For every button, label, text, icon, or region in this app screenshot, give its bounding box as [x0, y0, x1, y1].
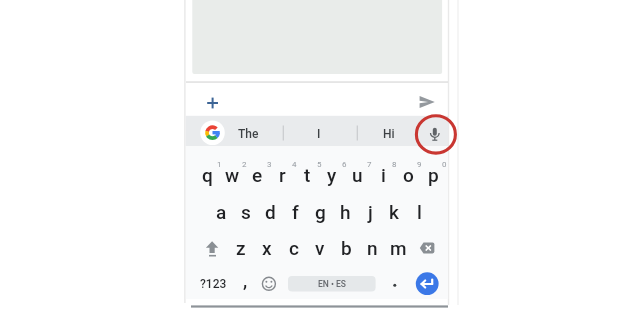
button[interactable]: s [216, 197, 276, 227]
button[interactable] [199, 234, 226, 261]
button[interactable]: ?123 [183, 269, 243, 299]
staticText: o [403, 164, 414, 186]
staticText: s [241, 201, 251, 223]
staticText: k [389, 201, 399, 223]
button[interactable]: x [237, 233, 297, 263]
staticText: 9 [417, 160, 422, 169]
button[interactable]: m [368, 233, 428, 263]
staticText: 6 [342, 160, 347, 169]
staticText: 3 [267, 160, 272, 169]
button[interactable]: , [215, 265, 275, 295]
button[interactable]: The [218, 119, 278, 149]
staticText: h [340, 201, 351, 223]
staticText: 1 [217, 160, 222, 169]
button[interactable] [198, 89, 226, 117]
staticText: , [243, 269, 248, 291]
button[interactable]: p [403, 160, 463, 190]
staticText: i [381, 164, 386, 186]
staticText: Hi [383, 127, 395, 141]
button[interactable]: EN • ES [302, 269, 362, 299]
button[interactable]: v [290, 233, 350, 263]
staticText: c [289, 237, 299, 259]
staticText: j [368, 201, 373, 223]
staticText: d [265, 201, 276, 223]
button[interactable]: I [289, 119, 349, 149]
staticText: x [262, 237, 272, 259]
button[interactable]: t [277, 160, 337, 190]
staticText: g [315, 201, 326, 223]
button[interactable]: g [290, 197, 350, 227]
button[interactable]: Hi [359, 119, 419, 149]
button[interactable] [256, 271, 282, 297]
staticText: u [352, 164, 363, 186]
staticText: ?123 [200, 277, 227, 291]
staticText: 5 [317, 160, 322, 169]
button[interactable]: i [353, 160, 413, 190]
button[interactable] [382, 272, 408, 298]
staticText: q [202, 164, 213, 186]
staticText: 2 [242, 160, 247, 169]
button[interactable] [414, 234, 441, 261]
staticText: f [292, 201, 299, 223]
button[interactable]: z [211, 233, 271, 263]
button[interactable]: b [316, 233, 376, 263]
staticText: v [315, 237, 325, 259]
staticText: a [216, 201, 227, 223]
staticText: 4 [292, 160, 297, 169]
button[interactable]: j [340, 197, 400, 227]
button[interactable]: h [315, 197, 375, 227]
staticText: EN • ES [318, 279, 346, 289]
button[interactable]: u [327, 160, 387, 190]
button[interactable]: d [240, 197, 300, 227]
staticText: m [390, 237, 407, 259]
staticText: I [317, 127, 321, 141]
staticText: 7 [367, 160, 372, 169]
staticText: p [428, 164, 439, 186]
staticText: n [367, 237, 378, 259]
staticText: e [252, 164, 263, 186]
staticText: 8 [392, 160, 397, 169]
button[interactable] [420, 120, 448, 147]
staticText: r [279, 164, 286, 186]
button[interactable]: a [191, 197, 251, 227]
button[interactable]: r [252, 160, 312, 190]
staticText: t [304, 164, 311, 186]
staticText: w [225, 164, 240, 186]
button[interactable]: l [389, 197, 449, 227]
button[interactable]: e [227, 160, 287, 190]
button[interactable]: q [177, 160, 237, 190]
button[interactable]: n [342, 233, 402, 263]
button[interactable]: w [202, 160, 262, 190]
button[interactable]: o [378, 160, 438, 190]
button[interactable]: y [302, 160, 362, 190]
button[interactable] [415, 272, 440, 296]
button[interactable]: f [265, 197, 325, 227]
staticText: y [327, 164, 337, 186]
button[interactable] [288, 276, 376, 292]
staticText: b [341, 237, 352, 259]
staticText: 0 [442, 160, 447, 169]
staticText: The [238, 127, 259, 141]
staticText: z [236, 237, 246, 259]
button[interactable]: k [364, 197, 424, 227]
button[interactable] [199, 120, 226, 147]
button[interactable]: c [264, 233, 324, 263]
button[interactable] [413, 88, 441, 116]
staticText: l [417, 201, 422, 223]
